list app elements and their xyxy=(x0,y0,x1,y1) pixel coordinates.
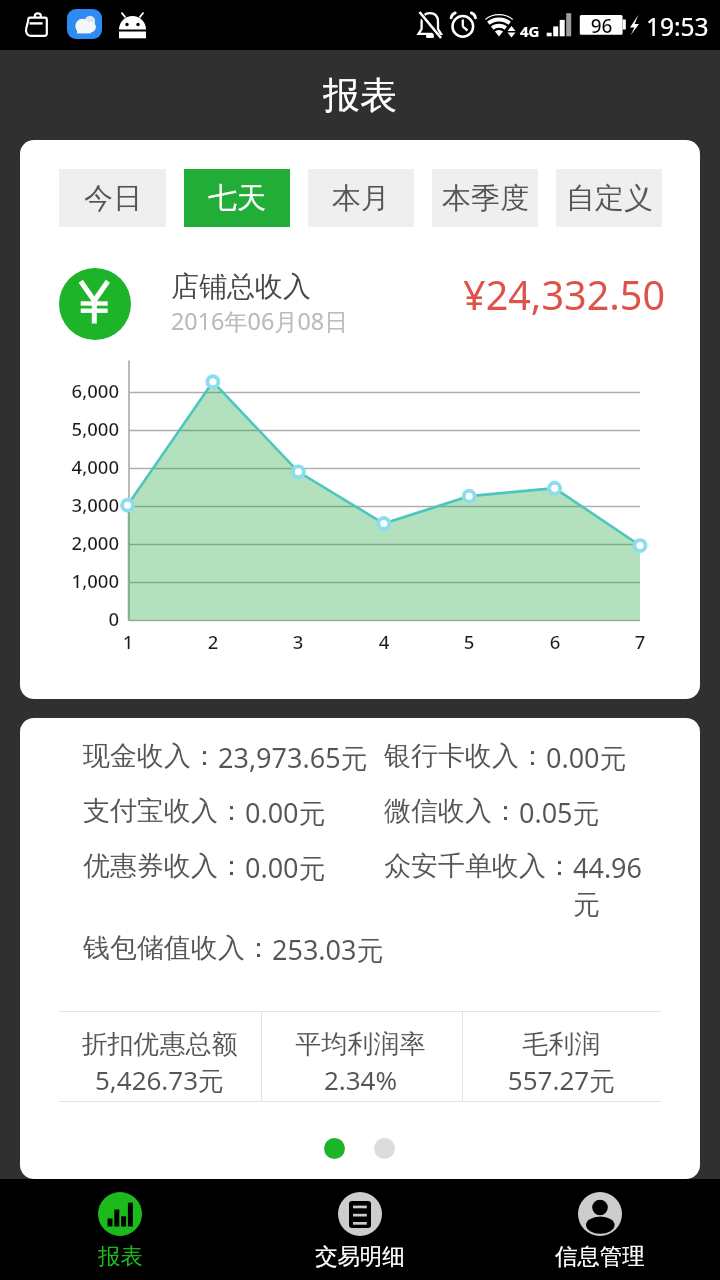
button[interactable]: 报表 xyxy=(0,1179,240,1280)
staticText: 店铺总收入 xyxy=(171,269,311,304)
button[interactable]: 信息管理 xyxy=(480,1179,720,1280)
staticText: 微信收入： xyxy=(384,794,519,828)
staticText: 0.05元 xyxy=(519,794,600,831)
staticText: 平均利润率 xyxy=(260,1028,461,1061)
staticText: 优惠券收入： xyxy=(83,849,245,883)
staticText: ¥24,332.50 xyxy=(320,268,665,322)
staticText: 44.96元 xyxy=(573,849,661,922)
staticText: 6,000 xyxy=(39,378,119,403)
staticText: 1 xyxy=(108,629,148,654)
staticText: 3 xyxy=(278,629,318,654)
staticText: 0.00元 xyxy=(245,794,326,831)
staticText: 自定义 xyxy=(566,180,653,217)
staticText: 5,000 xyxy=(39,416,119,441)
staticText: 信息管理 xyxy=(555,1242,645,1270)
button[interactable]: 今日 xyxy=(59,169,166,227)
staticText: 96 xyxy=(580,13,623,39)
staticText: 0.00元 xyxy=(546,739,627,776)
staticText: 报表 xyxy=(98,1242,143,1270)
button[interactable]: 本月 xyxy=(308,169,414,227)
staticText: 23,973.65元 xyxy=(218,739,368,776)
staticText: 3,000 xyxy=(39,492,119,517)
staticText: 钱包储值收入： xyxy=(83,931,272,965)
staticText: 557.27元 xyxy=(461,1062,662,1098)
staticText: 交易明细 xyxy=(315,1242,405,1270)
staticText: 5 xyxy=(449,629,489,654)
staticText: 253.03元 xyxy=(272,931,384,968)
staticText: 2016年06月08日 xyxy=(171,305,348,337)
staticText: 4,000 xyxy=(39,454,119,479)
staticText: 0 xyxy=(39,606,119,631)
staticText: 七天 xyxy=(208,180,266,217)
staticText: 0.00元 xyxy=(245,849,326,886)
staticText: 众安千单收入： xyxy=(384,849,573,883)
staticText: 4 xyxy=(364,629,404,654)
staticText: 4G xyxy=(520,21,540,41)
staticText: 1,000 xyxy=(39,568,119,593)
staticText: 支付宝收入： xyxy=(83,794,245,828)
staticText: 银行卡收入： xyxy=(384,739,546,773)
staticText: 7 xyxy=(620,629,660,654)
staticText: 5,426.73元 xyxy=(59,1062,260,1098)
staticText: 现金收入： xyxy=(83,739,218,773)
staticText: 本季度 xyxy=(442,180,529,217)
staticText: 折扣优惠总额 xyxy=(59,1028,260,1061)
staticText: 2,000 xyxy=(39,530,119,555)
staticText: 2 xyxy=(193,629,233,654)
button[interactable]: 交易明细 xyxy=(240,1179,480,1280)
staticText: 毛利润 xyxy=(461,1028,662,1061)
button[interactable]: 七天 xyxy=(184,169,290,227)
staticText: 19:53 xyxy=(646,10,709,43)
staticText: 本月 xyxy=(332,180,390,217)
button[interactable]: 自定义 xyxy=(556,169,662,227)
staticText: 报表 xyxy=(323,72,397,119)
staticText: 6 xyxy=(535,629,575,654)
button[interactable]: 本季度 xyxy=(432,169,538,227)
staticText: 2.34% xyxy=(260,1062,461,1097)
staticText: 今日 xyxy=(84,180,142,217)
